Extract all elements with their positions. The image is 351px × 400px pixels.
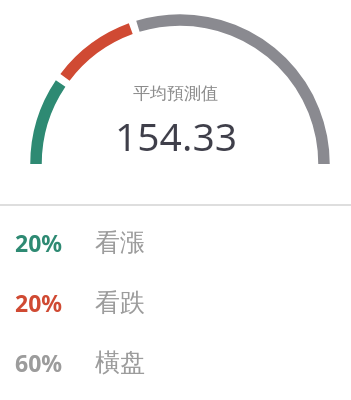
staticText: 154.33 xyxy=(115,109,237,162)
staticText: 20% xyxy=(15,287,63,318)
button[interactable]: 60% xyxy=(0,332,351,392)
staticText: 橫盘 xyxy=(95,347,145,378)
staticText: 平均預測值 xyxy=(133,83,218,104)
button[interactable]: 20% xyxy=(0,212,351,272)
staticText: 20% xyxy=(15,227,63,258)
button[interactable]: 20% xyxy=(0,272,351,332)
staticText: 看漲 xyxy=(95,227,145,258)
staticText: 看跌 xyxy=(95,287,145,318)
staticText: 60% xyxy=(15,347,63,378)
